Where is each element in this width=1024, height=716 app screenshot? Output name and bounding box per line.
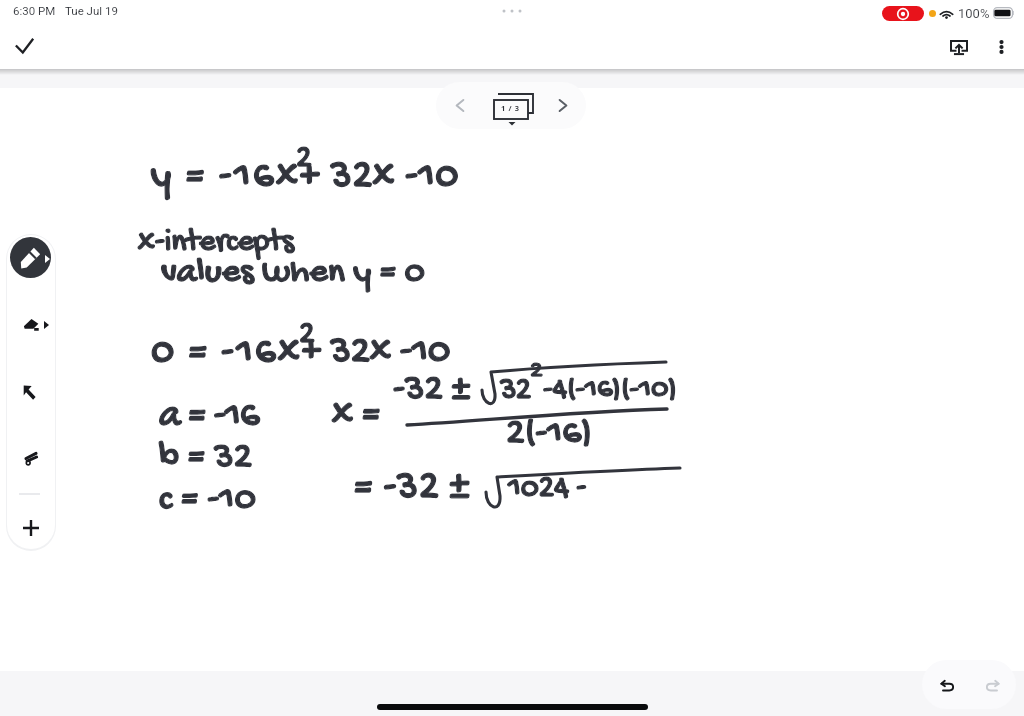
staticText: 1024 -: [508, 470, 587, 508]
staticText: 6:30 PM: [13, 4, 56, 17]
staticText: c = -10: [159, 478, 257, 523]
staticText: 2: [299, 316, 315, 354]
staticText: 0 = -16x: [151, 329, 302, 377]
staticText: 2(-16): [506, 412, 593, 457]
staticText: 100%: [958, 6, 990, 21]
staticText: -32 ±: [393, 368, 470, 413]
staticText: x-intercepts: [138, 224, 294, 262]
staticText: = -32 ±: [354, 464, 471, 512]
staticText: a = -16: [159, 394, 259, 440]
button[interactable]: Add: [16, 513, 46, 543]
staticText: -32 ±: [393, 368, 470, 413]
button[interactable]: Laser pointer: [17, 444, 45, 472]
staticText: Tue Jul 19: [65, 4, 118, 17]
staticText: x =: [332, 392, 381, 439]
staticText: a = -16: [159, 394, 259, 440]
staticText: + 32x -10: [302, 329, 451, 376]
staticText: + 32x -10: [300, 153, 460, 201]
button[interactable]: Present to device: [939, 29, 979, 69]
staticText: c = -10: [159, 478, 257, 523]
staticText: x =: [332, 392, 381, 439]
button[interactable]: Select tool: [17, 378, 45, 406]
staticText: 1024 -: [508, 470, 587, 508]
staticText: values when y = 0: [161, 252, 426, 294]
staticText: -4(-16)(-10): [543, 372, 677, 409]
button[interactable]: Undo: [928, 666, 966, 704]
button[interactable]: Previous page: [441, 87, 478, 124]
button[interactable]: Pages, 1 of 3: [486, 90, 536, 124]
staticText: values when y = 0: [161, 252, 426, 294]
staticText: 2: [296, 140, 312, 178]
button[interactable]: Eraser tool: [15, 309, 47, 341]
staticText: b = 32: [159, 436, 253, 481]
staticText: = -32 ±: [354, 464, 471, 512]
button[interactable]: Next page: [544, 87, 581, 124]
button[interactable]: Pen tool: [8, 237, 53, 282]
staticText: + 32x -10: [300, 153, 460, 201]
button[interactable]: Done: [5, 30, 43, 68]
staticText: 2: [296, 140, 312, 178]
staticText: 32: [500, 372, 530, 410]
staticText: 0 = -16x: [151, 329, 302, 377]
staticText: 2: [530, 356, 543, 387]
staticText: 32: [500, 372, 530, 410]
staticText: -4(-16)(-10): [543, 372, 677, 409]
staticText: y = -16x: [151, 153, 301, 201]
staticText: 1 / 3: [501, 103, 520, 113]
staticText: x-intercepts: [138, 224, 294, 262]
button[interactable]: Redo: [973, 666, 1011, 704]
staticText: b = 32: [159, 436, 253, 481]
staticText: 2: [530, 356, 543, 387]
button[interactable]: Screen recording: [882, 6, 924, 21]
staticText: 2: [299, 316, 315, 354]
staticText: 2(-16): [506, 412, 593, 457]
staticText: + 32x -10: [302, 329, 451, 376]
staticText: y = -16x: [151, 153, 301, 201]
button[interactable]: More options: [981, 29, 1021, 69]
